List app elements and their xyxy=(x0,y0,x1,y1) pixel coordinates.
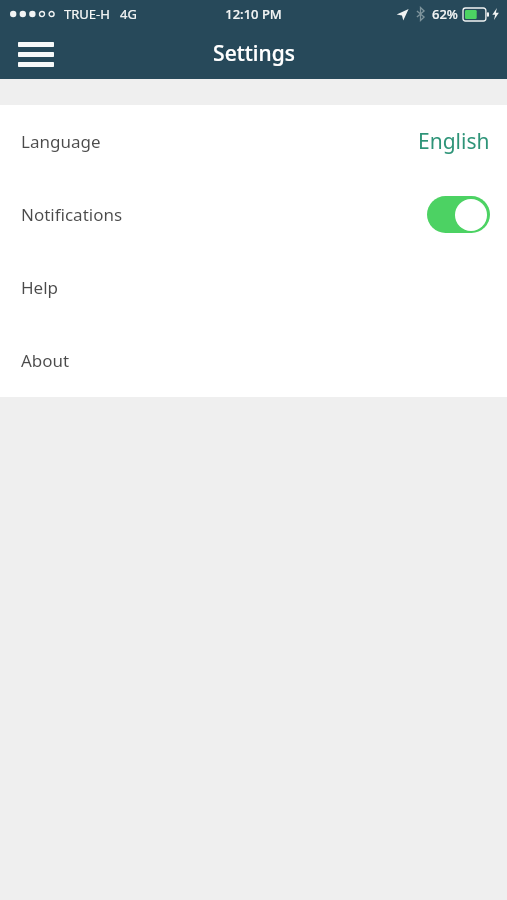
staticText: 4G xyxy=(120,5,137,23)
staticText: Help xyxy=(21,276,59,299)
staticText: 62% xyxy=(432,5,458,23)
staticText: Language xyxy=(21,130,101,153)
button[interactable]: Notifications xyxy=(0,178,507,251)
staticText: Notifications xyxy=(21,203,123,226)
staticText: About xyxy=(21,349,70,372)
staticText: 12:10 PM xyxy=(225,5,282,23)
button[interactable]: Open navigation menu xyxy=(12,30,60,78)
staticText: English xyxy=(418,127,490,156)
button[interactable]: Help xyxy=(0,251,507,324)
button[interactable]: Language xyxy=(0,105,507,178)
staticText: Settings xyxy=(213,39,295,68)
button[interactable]: About xyxy=(0,324,507,397)
button[interactable]: Notifications toggle, on xyxy=(427,196,490,233)
staticText: TRUE-H xyxy=(64,5,110,23)
